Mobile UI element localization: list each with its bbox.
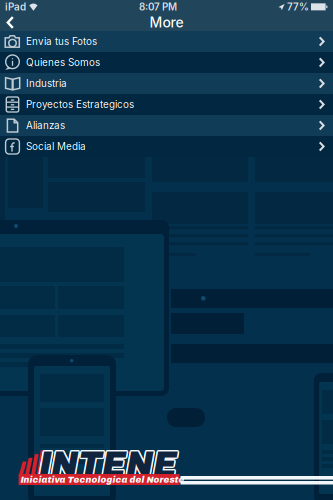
staticText: INTENE <box>40 444 178 485</box>
staticText: Envia tus Fotos <box>26 35 97 47</box>
staticText: INTENE <box>38 445 176 486</box>
button[interactable]: Social Media <box>0 136 333 157</box>
staticText: INTENE <box>39 445 177 486</box>
button[interactable]: Alianzas <box>0 115 333 136</box>
staticText: 77% <box>287 1 309 13</box>
staticText: iPad <box>5 1 26 13</box>
button[interactable]: Industria <box>0 73 333 94</box>
staticText: INTENE <box>40 443 178 483</box>
staticText: Social Media <box>26 140 86 152</box>
staticText: INTENE <box>38 444 176 485</box>
staticText: INTENE <box>39 444 177 484</box>
button[interactable]: Proyectos Estrategicos <box>0 94 333 115</box>
staticText: INTENE <box>37 444 175 484</box>
button[interactable]: Back <box>0 14 25 31</box>
staticText: Quienes Somos <box>26 56 100 68</box>
staticText: INTENE <box>38 443 176 483</box>
staticText: INTENE <box>38 442 176 483</box>
staticText: INTENE <box>40 444 178 484</box>
staticText: INTENE <box>39 442 177 483</box>
staticText: Industria <box>26 77 67 89</box>
staticText: Proyectos Estrategicos <box>26 98 134 110</box>
staticText: More <box>149 14 183 31</box>
button[interactable]: Quienes Somos <box>0 52 333 73</box>
button[interactable]: Envia tus Fotos <box>0 31 333 52</box>
staticText: 8:07 PM <box>139 1 177 13</box>
staticText: Iniciativa Tecnologica del Noreste <box>20 474 184 485</box>
staticText: Alianzas <box>26 119 65 131</box>
